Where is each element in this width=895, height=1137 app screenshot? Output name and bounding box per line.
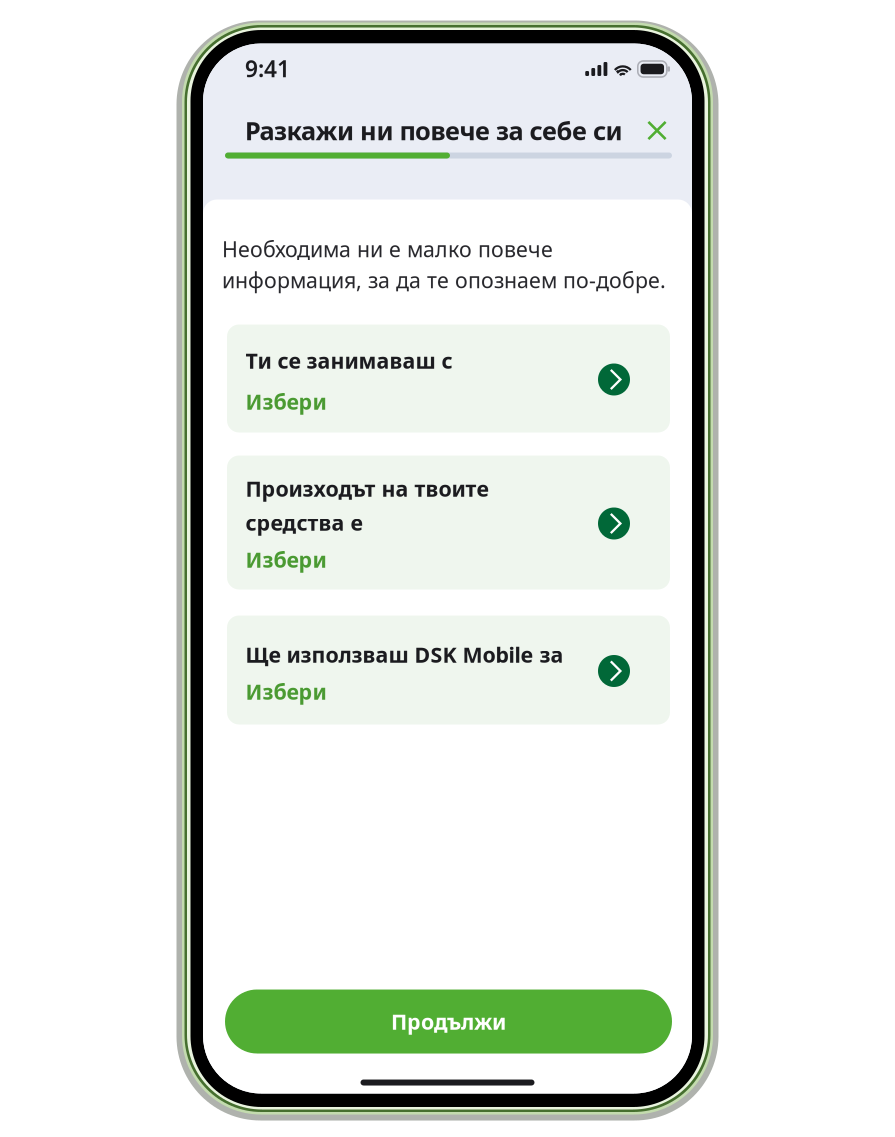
staticText: Ще използваш DSK Mobile за bbox=[245, 640, 563, 669]
button[interactable]: Продължи bbox=[225, 989, 672, 1053]
staticText: Необходима ни е малко повече bbox=[222, 235, 553, 263]
staticText: информация, за да те опознаем по-добре. bbox=[222, 266, 666, 294]
staticText: 9:41 bbox=[245, 53, 290, 84]
button[interactable]: Ти се занимаваш с bbox=[227, 324, 670, 432]
button[interactable]: Произходът на твоите bbox=[227, 455, 670, 589]
staticText: Избери bbox=[245, 545, 326, 574]
button[interactable]: Close bbox=[636, 109, 678, 151]
staticText: Ти се занимаваш с bbox=[245, 346, 452, 375]
staticText: Избери bbox=[245, 677, 326, 706]
staticText: Избери bbox=[245, 387, 326, 416]
button[interactable]: Ще използваш DSK Mobile за bbox=[227, 615, 670, 724]
staticText: Произходът на твоите bbox=[245, 474, 488, 503]
staticText: Разкажи ни повече за себе си bbox=[245, 113, 622, 147]
staticText: средства е bbox=[245, 508, 362, 537]
staticText: Продължи bbox=[391, 1007, 506, 1036]
